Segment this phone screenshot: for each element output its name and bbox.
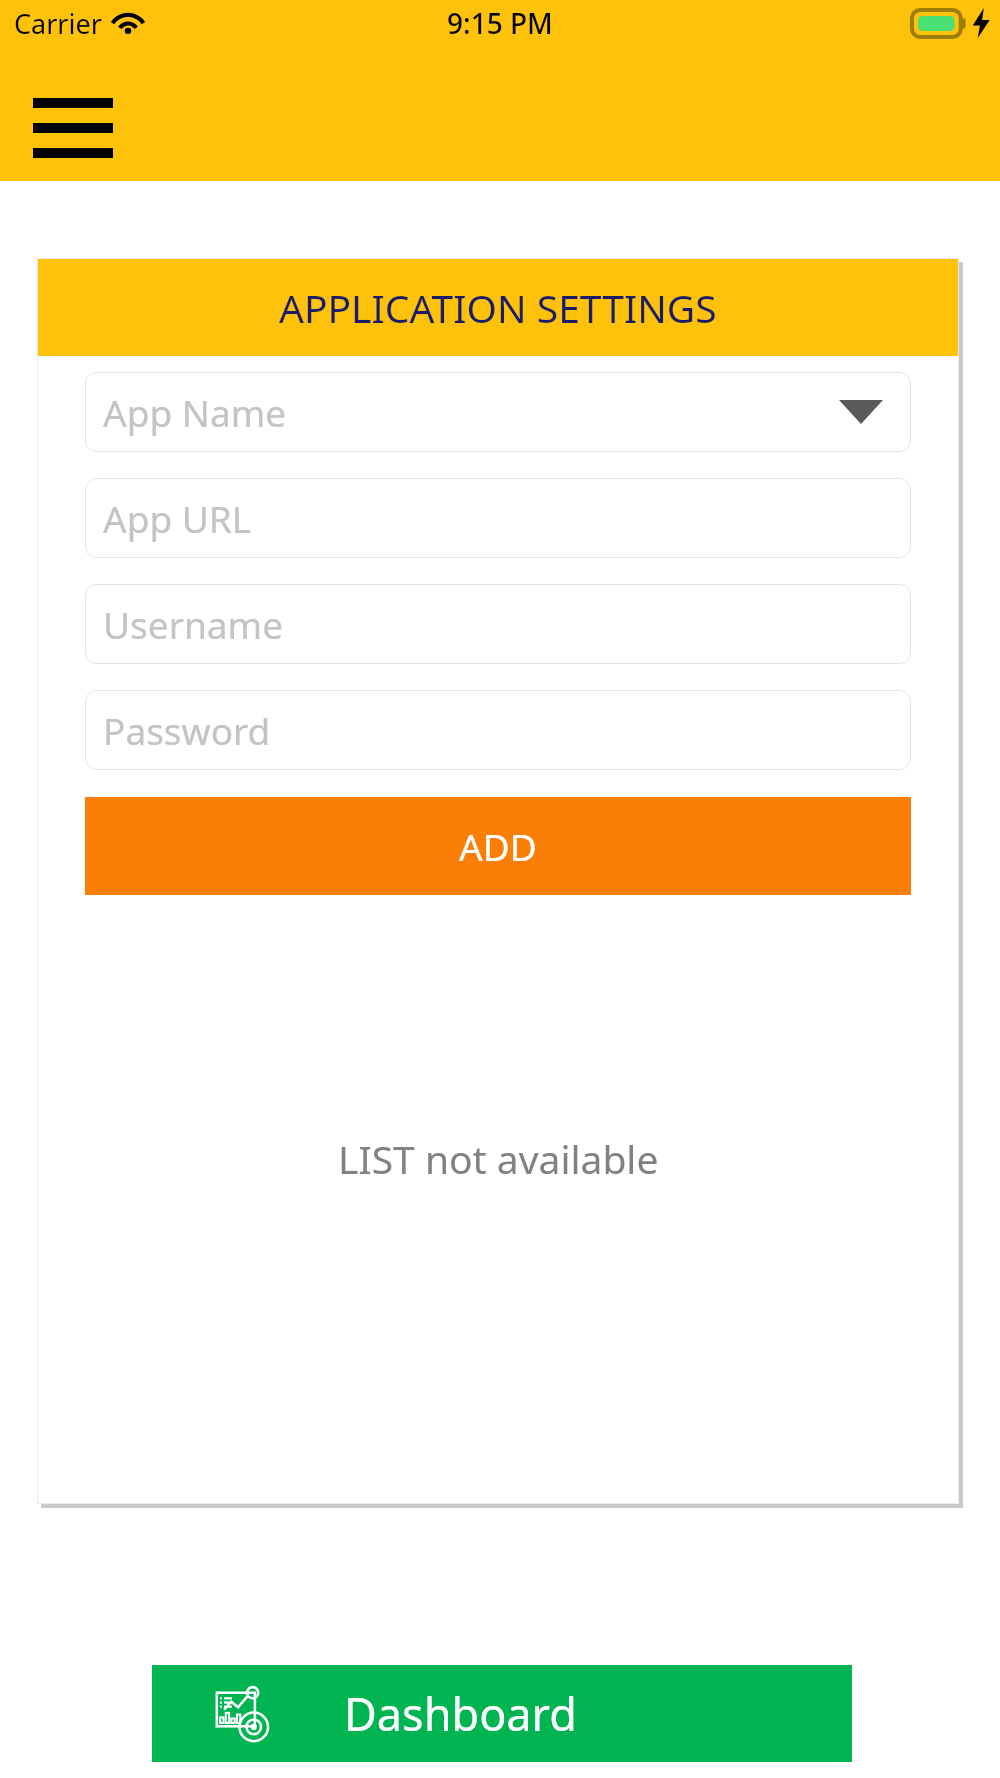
- button[interactable]: Username: [85, 584, 911, 664]
- staticText: APPLICATION SETTINGS: [279, 281, 717, 334]
- staticText: Dashboard: [344, 1683, 577, 1744]
- staticText: App Name: [103, 387, 287, 437]
- staticText: App URL: [103, 493, 252, 543]
- button[interactable]: ADD: [85, 797, 911, 895]
- other: Expand app name list: [839, 400, 883, 424]
- button[interactable]: App URL: [85, 478, 911, 558]
- button[interactable]: Dashboard: [152, 1665, 852, 1762]
- staticText: Carrier: [14, 5, 102, 42]
- button[interactable]: Open navigation menu: [14, 80, 132, 164]
- button[interactable]: App Name: [85, 372, 911, 452]
- staticText: LIST not available: [338, 1132, 659, 1185]
- staticText: 9:15 PM: [447, 4, 553, 42]
- staticText: ADD: [459, 821, 537, 871]
- button[interactable]: Password: [85, 690, 911, 770]
- staticText: Username: [103, 599, 284, 649]
- staticText: Password: [103, 705, 271, 755]
